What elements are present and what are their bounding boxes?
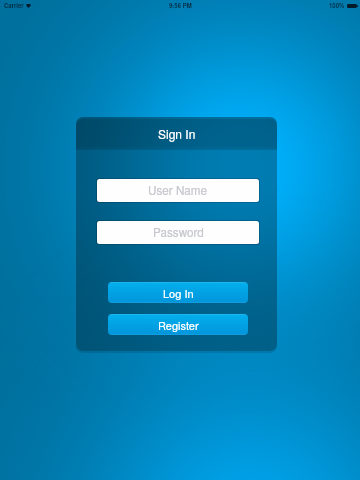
- staticText: 9:56 PM: [169, 1, 192, 10]
- button[interactable]: Register: [108, 314, 248, 335]
- staticText: Sign In: [158, 125, 196, 142]
- staticText: Log In: [163, 285, 194, 301]
- staticText: Password: [153, 224, 204, 241]
- button[interactable]: User Name: [96, 178, 260, 203]
- staticText: User Name: [148, 182, 208, 199]
- button[interactable]: Log In: [108, 282, 248, 303]
- staticText: Register: [158, 317, 199, 333]
- staticText: 100%: [329, 1, 345, 10]
- button[interactable]: Sign In: [76, 117, 277, 150]
- staticText: Carrier: [4, 1, 24, 10]
- button[interactable]: Password: [96, 220, 260, 245]
